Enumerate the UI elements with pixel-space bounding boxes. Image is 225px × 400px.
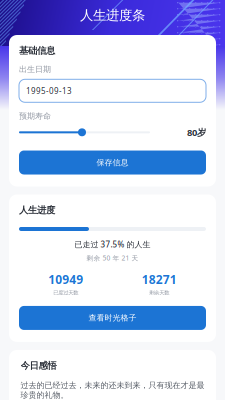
button[interactable]: 保存信息 (19, 150, 206, 174)
staticText: 保存信息 (96, 158, 128, 167)
staticText: 人生进度条 (80, 7, 145, 23)
staticText: 80岁 (187, 126, 206, 138)
staticText: 过去的已经过去，未来的还未到来，只有现在才是最珍贵的礼物。 (20, 380, 204, 400)
staticText: 人生进度 (19, 204, 55, 216)
staticText: 剩余 50 年 21 天 (86, 254, 138, 262)
staticText: 1995-09-13 (26, 85, 72, 96)
staticText: 基础信息 (19, 45, 55, 56)
staticText: 出生日期 (19, 64, 51, 74)
staticText: 预期寿命 (19, 111, 51, 121)
staticText: 今日感悟 (20, 360, 56, 371)
staticText: 10949 (48, 271, 83, 287)
staticText: 剩余天数 (149, 289, 169, 296)
staticText: 已走过 37.5% 的人生 (74, 239, 150, 250)
button[interactable]: 查看时光格子 (19, 306, 206, 330)
staticText: 18271 (142, 271, 177, 287)
staticText: 查看时光格子 (88, 313, 136, 323)
staticText: 已度过天数 (53, 289, 78, 296)
